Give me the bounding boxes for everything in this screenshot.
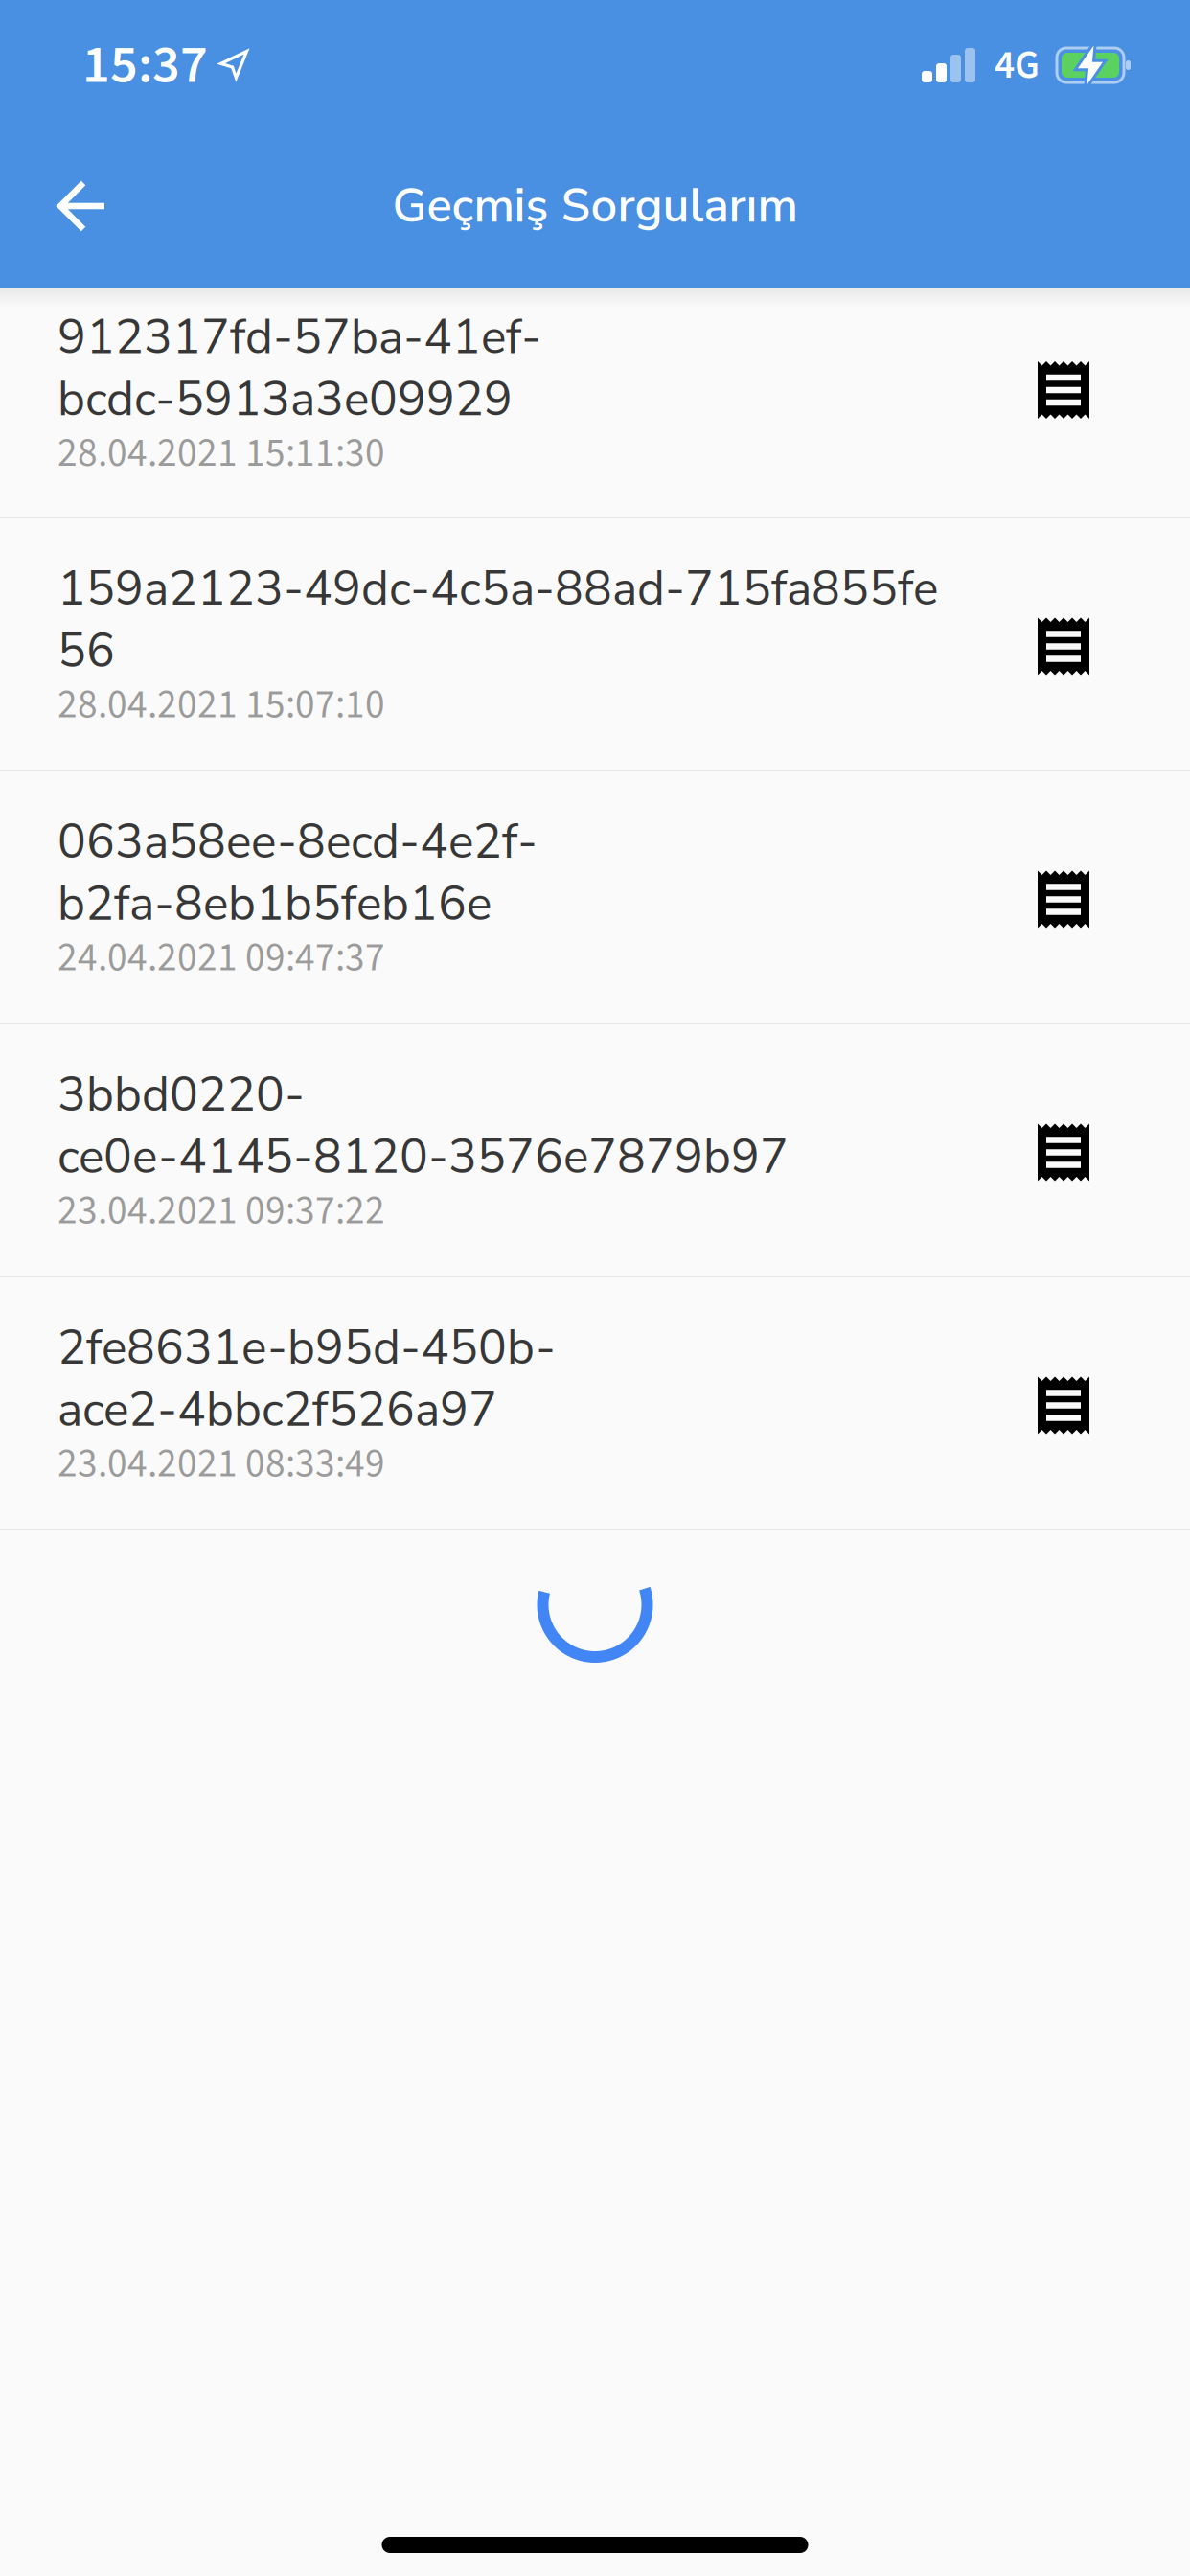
button[interactable]: 2fe8631e-b95d-450b- ace2-4bbc2f526a97 xyxy=(0,1277,1190,1529)
staticText: 24.04.2021 09:47:37 xyxy=(57,930,385,986)
staticText: 912317fd-57ba-41ef- bcdc-5913a3e09929 xyxy=(57,305,541,432)
staticText: 159a2123-49dc-4c5a-88ad-715fa855fe 56 xyxy=(57,557,938,683)
button[interactable]: 3bbd0220- ce0e-4145-8120-3576e7879b97 xyxy=(0,1024,1190,1276)
staticText: 4G xyxy=(995,37,1040,93)
staticText: 15:37 xyxy=(82,27,208,103)
button[interactable]: Back xyxy=(0,182,106,230)
staticText: 28.04.2021 15:07:10 xyxy=(57,677,385,733)
staticText: 23.04.2021 09:37:22 xyxy=(57,1183,385,1239)
button[interactable]: 912317fd-57ba-41ef- bcdc-5913a3e09929 xyxy=(0,287,1190,517)
button[interactable]: 063a58ee-8ecd-4e2f- b2fa-8eb1b5feb16e xyxy=(0,771,1190,1023)
staticText: 28.04.2021 15:11:30 xyxy=(57,425,385,482)
staticText: 2fe8631e-b95d-450b- ace2-4bbc2f526a97 xyxy=(57,1316,556,1442)
staticText: 063a58ee-8ecd-4e2f- b2fa-8eb1b5feb16e xyxy=(57,810,538,936)
staticText: 3bbd0220- ce0e-4145-8120-3576e7879b97 xyxy=(57,1063,789,1189)
staticText: Geçmiş Sorgularım xyxy=(392,174,798,238)
button[interactable]: 159a2123-49dc-4c5a-88ad-715fa855fe 56 xyxy=(0,518,1190,770)
staticText: 23.04.2021 08:33:49 xyxy=(57,1436,385,1492)
